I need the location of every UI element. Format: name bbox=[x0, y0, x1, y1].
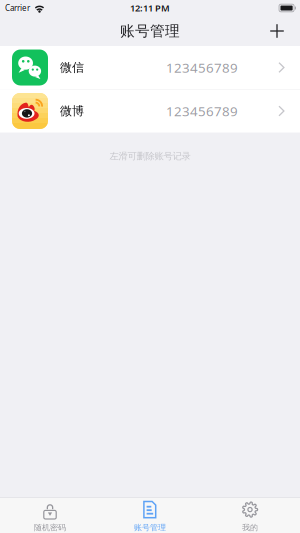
staticText: 我的 bbox=[242, 523, 258, 532]
staticText: 12:11 PM bbox=[130, 2, 170, 14]
button[interactable]: 我的 bbox=[200, 495, 300, 533]
button[interactable]: 微信 bbox=[0, 46, 300, 89]
button[interactable]: 账号管理 bbox=[100, 495, 200, 533]
button[interactable]: 微博 bbox=[0, 89, 300, 132]
staticText: 左滑可删除账号记录 bbox=[109, 150, 190, 162]
staticText: 123456789 bbox=[166, 102, 238, 120]
staticText: 账号管理 bbox=[134, 523, 166, 532]
staticText: Carrier bbox=[5, 3, 30, 13]
button[interactable]: 随机密码 bbox=[0, 495, 100, 533]
staticText: 微博 bbox=[60, 104, 84, 118]
button[interactable]: Add account bbox=[262, 16, 292, 46]
staticText: 随机密码 bbox=[34, 523, 66, 532]
staticText: 微信 bbox=[60, 60, 84, 75]
staticText: 123456789 bbox=[166, 59, 238, 76]
staticText: 账号管理 bbox=[120, 22, 180, 40]
